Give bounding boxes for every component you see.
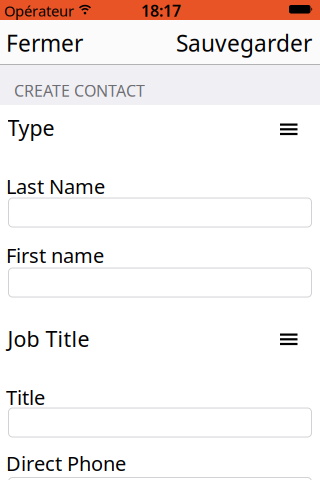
staticText: Sauvegarder	[176, 28, 312, 58]
staticText: Type	[7, 113, 54, 142]
button[interactable]: Type	[7, 113, 311, 139]
button[interactable]: Last Name	[8, 198, 311, 227]
staticText: Title	[6, 384, 45, 411]
staticText: CREATE CONTACT	[14, 80, 145, 101]
staticText: Last Name	[6, 173, 105, 200]
staticText: Opérateur	[4, 1, 74, 20]
staticText: Direct Phone	[6, 450, 126, 477]
button[interactable]: First name	[8, 268, 311, 297]
staticText: 18:17	[141, 0, 181, 21]
button[interactable]: Job Title	[7, 324, 311, 350]
staticText: Job Title	[7, 324, 89, 353]
staticText: Fermer	[6, 28, 83, 58]
button[interactable]: Sauvegarder	[176, 28, 312, 58]
button[interactable]: Fermer	[6, 28, 83, 58]
button[interactable]: Title	[8, 408, 311, 437]
button[interactable]: Direct Phone	[8, 477, 311, 480]
staticText: First name	[6, 242, 104, 269]
